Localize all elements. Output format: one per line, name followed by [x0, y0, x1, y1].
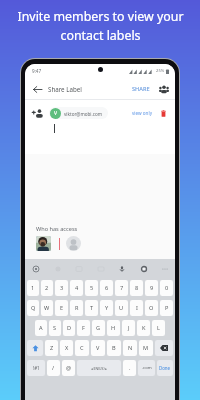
button[interactable]: view only: [132, 110, 152, 116]
button[interactable]: 7: [115, 280, 128, 296]
button[interactable]: 6: [100, 280, 113, 296]
staticText: D: [67, 324, 72, 332]
staticText: B: [112, 344, 116, 352]
staticText: S: [53, 324, 57, 332]
staticText: 8: [135, 284, 139, 292]
staticText: A: [39, 324, 43, 332]
button[interactable]: 2: [41, 280, 53, 296]
button[interactable]: Keyboard tool: [139, 264, 148, 273]
button[interactable]: U: [115, 300, 128, 316]
button[interactable]: Members: [157, 83, 170, 96]
button[interactable]: V: [91, 340, 105, 356]
button[interactable]: 3: [55, 280, 68, 296]
staticText: F: [82, 324, 85, 332]
staticText: L: [157, 324, 160, 332]
staticText: X: [65, 344, 69, 352]
button[interactable]: E: [55, 300, 68, 316]
button[interactable]: B: [107, 340, 121, 356]
staticText: .com: [142, 365, 152, 371]
button[interactable]: H: [107, 320, 120, 336]
button[interactable]: /: [47, 360, 60, 376]
staticText: Done: [159, 365, 171, 371]
staticText: V: [54, 110, 58, 117]
staticText: SHARE: [132, 85, 150, 93]
button[interactable]: 0: [160, 280, 173, 296]
button[interactable]: P: [160, 300, 173, 316]
button[interactable]: Keyboard tool: [31, 264, 40, 273]
staticText: P: [165, 304, 169, 312]
button[interactable]: Member avatar: [36, 236, 51, 251]
staticText: Who has access: [36, 225, 78, 233]
staticText: 25%: [156, 68, 165, 74]
staticText: T: [90, 304, 94, 312]
button[interactable]: I: [130, 300, 143, 316]
staticText: I: [136, 304, 138, 312]
button[interactable]: T: [85, 300, 98, 316]
button[interactable]: C: [75, 340, 89, 356]
staticText: viktor@mobi.com: [64, 111, 103, 117]
button[interactable]: Z: [45, 340, 58, 356]
button[interactable]: Keyboard tool: [117, 264, 126, 273]
staticText: 4: [75, 284, 79, 292]
staticText: N: [128, 344, 133, 352]
staticText: W: [44, 304, 50, 312]
button[interactable]: G: [92, 320, 105, 336]
button[interactable]: Keyboard tool: [53, 264, 62, 273]
staticText: K: [142, 324, 146, 332]
staticText: G: [96, 324, 101, 332]
button[interactable]: L: [152, 320, 165, 336]
staticText: M: [143, 344, 149, 352]
button[interactable]: Q: [27, 300, 39, 316]
staticText: H: [111, 324, 116, 332]
button[interactable]: 4: [70, 280, 83, 296]
staticText: .: [129, 364, 131, 372]
staticText: Y: [105, 304, 109, 312]
button[interactable]: D: [63, 320, 75, 336]
staticText: Z: [50, 344, 54, 352]
staticText: Invite members to view your: [17, 8, 184, 25]
button[interactable]: F: [77, 320, 90, 336]
button[interactable]: [27, 340, 43, 356]
button[interactable]: K: [137, 320, 150, 336]
button[interactable]: 5: [85, 280, 98, 296]
button[interactable]: A: [35, 320, 47, 336]
button[interactable]: [155, 340, 173, 356]
staticText: R: [75, 304, 79, 312]
button[interactable]: Remove: [159, 109, 167, 117]
staticText: O: [149, 304, 154, 312]
staticText: C: [80, 344, 84, 352]
button[interactable]: N: [123, 340, 137, 356]
staticText: 3: [60, 284, 64, 292]
staticText: 5: [90, 284, 94, 292]
button[interactable]: ◂ EN(US) ▸: [77, 360, 121, 376]
button[interactable]: W: [41, 300, 53, 316]
button[interactable]: SHARE: [131, 82, 151, 96]
staticText: Q: [31, 304, 36, 312]
button[interactable]: M: [139, 340, 153, 356]
staticText: 1: [31, 284, 35, 292]
button[interactable]: S: [49, 320, 61, 336]
staticText: @: [66, 364, 72, 372]
button[interactable]: 8: [130, 280, 143, 296]
button[interactable]: R: [70, 300, 83, 316]
staticText: Share Label: [48, 85, 82, 93]
button[interactable]: O: [145, 300, 158, 316]
staticText: 9:47: [32, 68, 42, 74]
button[interactable]: 9: [145, 280, 158, 296]
button[interactable]: .: [123, 360, 136, 376]
button[interactable]: 1: [27, 280, 39, 296]
button[interactable]: !#1: [27, 360, 45, 376]
staticText: 9: [150, 284, 154, 292]
button[interactable]: J: [122, 320, 135, 336]
button[interactable]: @: [62, 360, 75, 376]
button[interactable]: Keyboard tool: [160, 264, 169, 273]
button[interactable]: V: [49, 107, 108, 119]
button[interactable]: .com: [138, 360, 155, 376]
button[interactable]: Back: [30, 82, 44, 96]
button[interactable]: Done: [157, 360, 173, 376]
button[interactable]: X: [60, 340, 73, 356]
button[interactable]: Y: [100, 300, 113, 316]
staticText: ◂ EN(US) ▸: [91, 366, 108, 371]
